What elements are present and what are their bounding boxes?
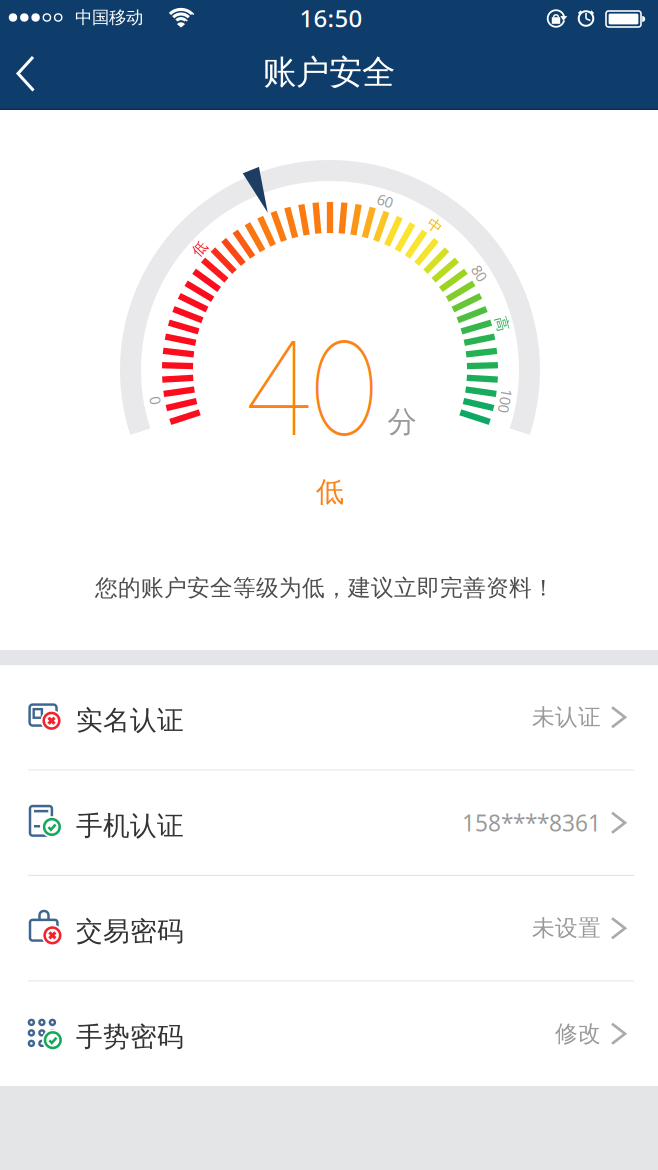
- staticText: 实名认证: [76, 704, 184, 737]
- staticText: 16:50: [299, 2, 362, 34]
- staticText: 中国移动: [75, 7, 143, 28]
- button[interactable]: 实名认证: [0, 665, 658, 769]
- staticText: 100: [493, 391, 517, 411]
- staticText: 60: [377, 191, 393, 210]
- staticText: 手势密码: [76, 1020, 184, 1053]
- staticText: 40: [237, 310, 384, 466]
- staticText: 未认证: [532, 703, 601, 731]
- staticText: 手机认证: [76, 809, 184, 842]
- staticText: 0: [151, 391, 159, 411]
- staticText: 修改: [555, 1020, 601, 1048]
- staticText: 158****8361: [462, 808, 601, 838]
- staticText: 中: [427, 217, 442, 235]
- button[interactable]: 手机认证: [0, 771, 658, 875]
- staticText: 您的账户安全等级为低，建议立即完善资料！: [95, 574, 555, 602]
- staticText: 低: [316, 475, 344, 509]
- button[interactable]: 交易密码: [0, 876, 658, 980]
- staticText: 交易密码: [76, 915, 184, 948]
- staticText: 分: [387, 404, 416, 440]
- staticText: 账户安全: [263, 52, 395, 93]
- staticText: 高: [494, 315, 509, 333]
- staticText: 未设置: [532, 914, 601, 942]
- button[interactable]: 手势密码: [0, 982, 658, 1086]
- staticText: 80: [471, 263, 487, 283]
- staticText: 低: [192, 240, 207, 258]
- button[interactable]: Back: [7, 52, 51, 96]
